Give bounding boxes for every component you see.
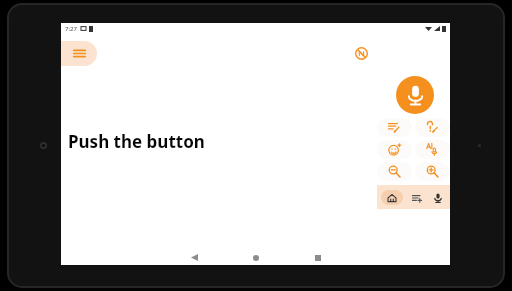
button[interactable]: Add emoji [377,140,412,159]
button[interactable]: Edit question [415,118,450,137]
button[interactable]: AI voice [415,140,450,159]
button[interactable]: List [408,189,425,206]
button[interactable]: Zoom in [415,162,450,181]
button[interactable]: Edit text [377,118,412,137]
button[interactable]: Microphone [429,189,446,206]
button[interactable]: Record [396,76,434,114]
button[interactable]: Remove ads [352,44,370,62]
button[interactable]: Menu [61,41,97,66]
button[interactable]: Home [381,190,403,205]
staticText: Push the button [68,130,205,153]
button[interactable]: Zoom out [377,162,412,181]
staticText: 7:27 [65,25,77,33]
